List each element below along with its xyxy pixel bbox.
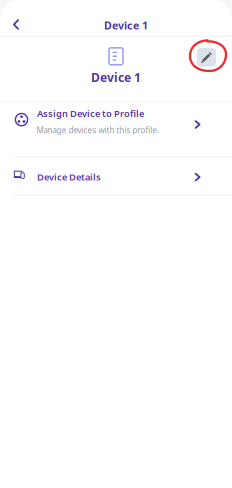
button[interactable]: Edit name (197, 48, 216, 66)
staticText: Manage devices with this profile. (37, 125, 160, 135)
button[interactable]: Device Details (0, 158, 232, 194)
button[interactable]: Assign Device to Profile (0, 103, 232, 158)
staticText: Device 1 (91, 69, 141, 85)
staticText: Device 1 (104, 18, 148, 32)
staticText: Device Details (37, 171, 101, 183)
button[interactable]: Back (1, 9, 31, 39)
staticText: Assign Device to Profile (37, 107, 144, 120)
